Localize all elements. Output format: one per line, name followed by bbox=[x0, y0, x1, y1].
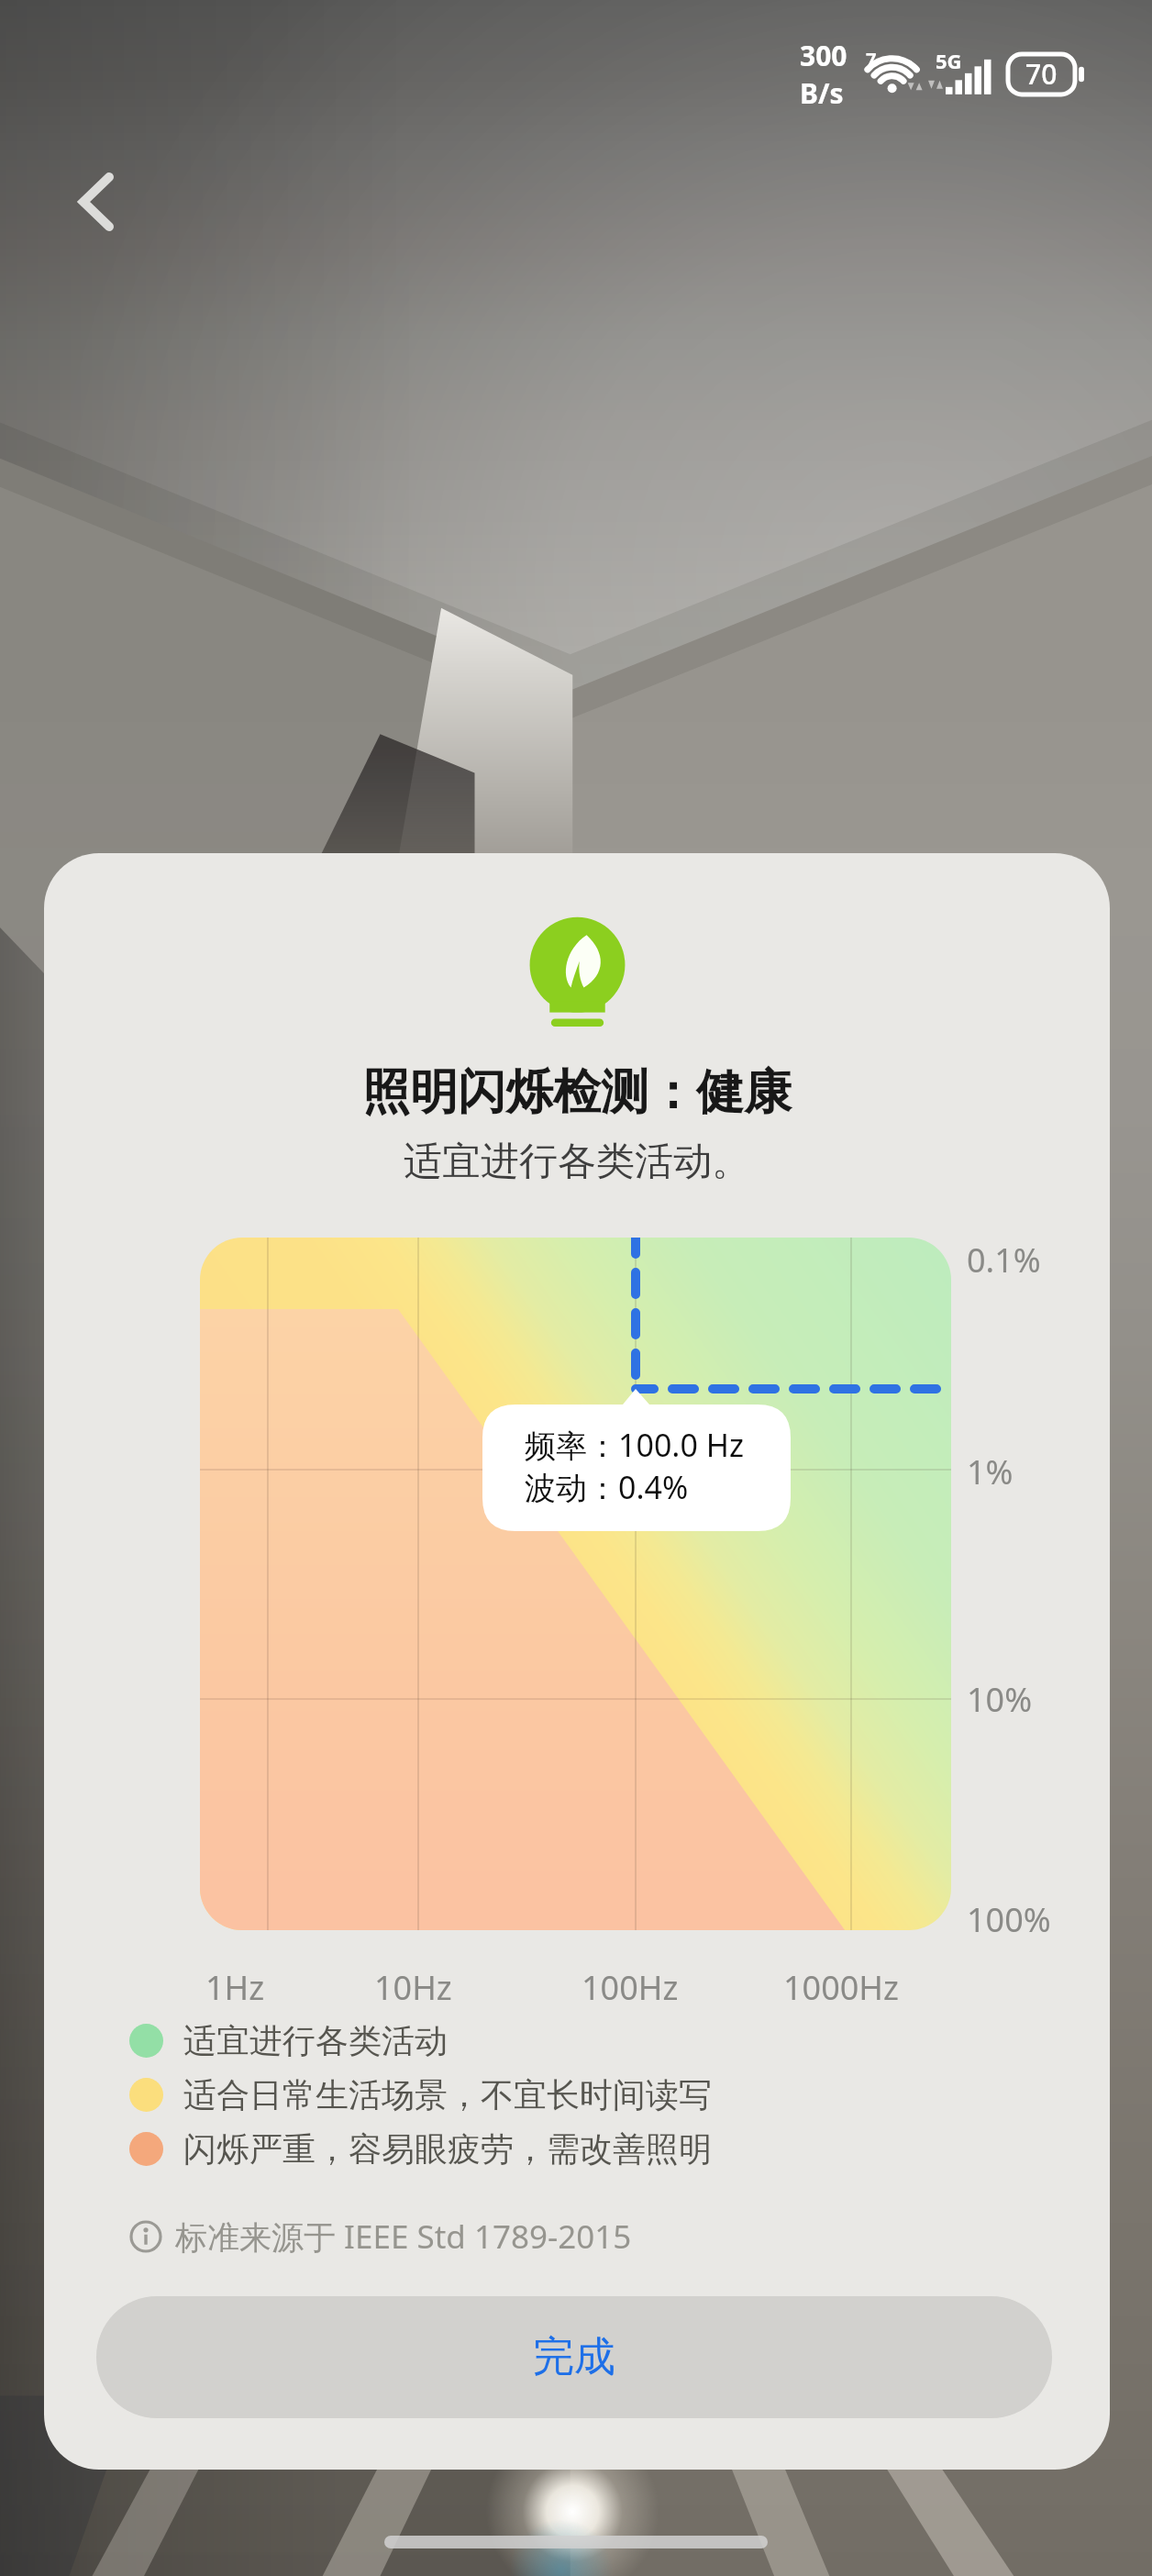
staticText: 1000Hz bbox=[783, 1965, 899, 2010]
staticText: 适宜进行各类活动。 bbox=[404, 1138, 750, 1186]
staticText: 10Hz bbox=[374, 1965, 452, 2010]
staticText: 波动：0.4% bbox=[525, 1466, 689, 1508]
staticText: 适宜进行各类活动 bbox=[183, 2020, 448, 2061]
staticText: 10% bbox=[967, 1677, 1033, 1722]
staticText: 标准来源于 IEEE Std 1789-2015 bbox=[175, 2215, 632, 2259]
staticText: 1Hz bbox=[205, 1965, 265, 2010]
staticText: 300 bbox=[800, 37, 847, 74]
staticText: 照明闪烁检测：健康 bbox=[362, 1062, 792, 1123]
staticText: 1% bbox=[967, 1449, 1014, 1494]
button[interactable]: 完成 bbox=[96, 2296, 1052, 2418]
staticText: 7 bbox=[866, 47, 877, 72]
staticText: 闪烁严重，容易眼疲劳，需改善照明 bbox=[183, 2128, 712, 2170]
button[interactable]: Back bbox=[50, 156, 142, 248]
staticText: 完成 bbox=[533, 2331, 615, 2383]
staticText: 5G bbox=[936, 47, 962, 74]
staticText: 0.1% bbox=[967, 1238, 1041, 1282]
staticText: B/s bbox=[800, 74, 844, 112]
staticText: 100Hz bbox=[582, 1965, 679, 2010]
staticText: 100% bbox=[967, 1897, 1051, 1942]
staticText: 适合日常生活场景，不宜长时间读写 bbox=[183, 2074, 712, 2115]
staticText: 频率：100.0 Hz bbox=[525, 1424, 744, 1466]
staticText: 70 bbox=[1025, 55, 1058, 93]
